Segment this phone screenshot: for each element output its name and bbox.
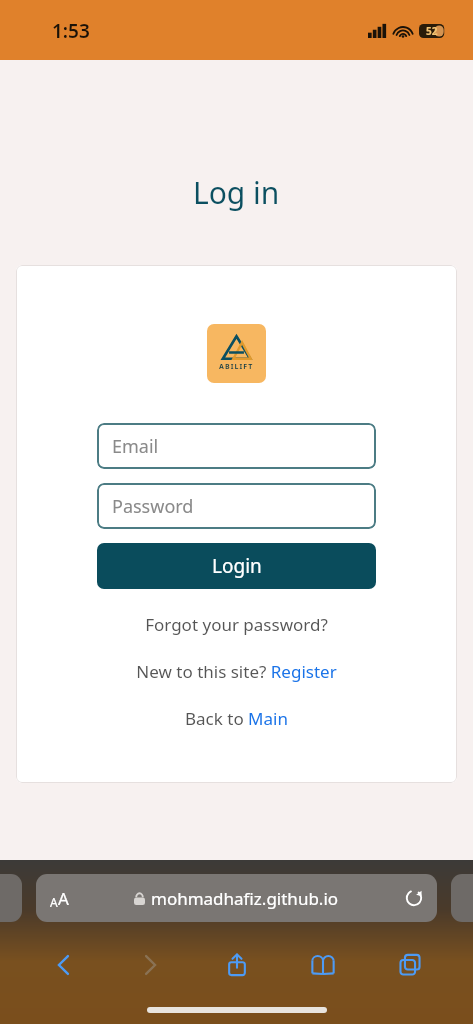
staticText: Back to Main (185, 707, 288, 730)
button[interactable]: Back to Main (97, 707, 376, 730)
staticText: Log in (193, 172, 280, 213)
button[interactable]: Back (41, 942, 87, 988)
staticText: mohmadhafiz.github.io (151, 887, 339, 910)
button[interactable]: Tabs (387, 942, 433, 988)
staticText: A (58, 887, 69, 910)
staticText: 52 (426, 24, 438, 38)
staticText: New to this site? Register (136, 660, 337, 683)
button[interactable]: Password (97, 483, 376, 529)
button[interactable]: Bookmarks (300, 942, 346, 988)
button[interactable]: Share (214, 942, 260, 988)
button[interactable]: Abilift logo (207, 324, 266, 383)
other: Reload (405, 889, 423, 907)
staticText: A (50, 894, 58, 910)
staticText: 1:53 (52, 18, 90, 44)
staticText: Password (112, 494, 194, 519)
staticText: Login (212, 553, 262, 579)
staticText: Forgot your password? (145, 613, 328, 636)
button[interactable]: A (36, 874, 437, 922)
button[interactable]: Login (97, 543, 376, 589)
button[interactable]: Email (97, 423, 376, 469)
button[interactable]: Forward (127, 942, 173, 988)
staticText: ABILIFT (219, 362, 254, 372)
button[interactable]: Forgot your password? (97, 613, 376, 636)
staticText: Email (112, 434, 159, 459)
button[interactable]: New to this site? Register (97, 660, 376, 683)
